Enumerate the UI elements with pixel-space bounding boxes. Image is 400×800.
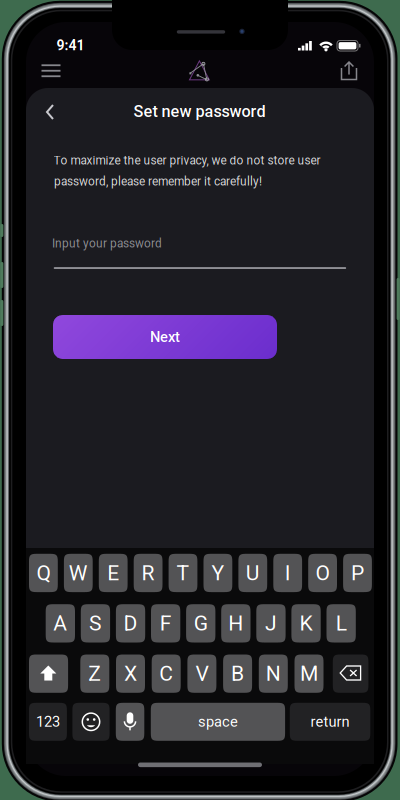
- staticText: Input your password: [52, 236, 162, 250]
- button[interactable]: S: [81, 604, 110, 642]
- button[interactable]: G: [186, 604, 215, 642]
- staticText: F: [160, 611, 172, 636]
- staticText: R: [142, 561, 155, 585]
- button[interactable]: C: [152, 654, 181, 693]
- button[interactable]: H: [221, 604, 250, 642]
- button[interactable]: [116, 703, 144, 741]
- staticText: Y: [211, 561, 224, 585]
- staticText: G: [194, 611, 208, 636]
- button[interactable]: D: [116, 604, 145, 642]
- staticText: M: [300, 661, 318, 686]
- button[interactable]: I: [273, 554, 302, 592]
- button[interactable]: R: [134, 554, 162, 592]
- button[interactable]: space: [151, 703, 285, 741]
- button[interactable]: W: [64, 554, 93, 592]
- button[interactable]: O: [308, 554, 337, 592]
- staticText: E: [107, 561, 119, 585]
- button[interactable]: F: [151, 604, 180, 642]
- button[interactable]: Share: [327, 51, 371, 91]
- staticText: P: [351, 561, 364, 585]
- button[interactable]: return: [290, 703, 370, 741]
- button[interactable]: L: [326, 604, 356, 642]
- staticText: D: [124, 611, 138, 636]
- button[interactable]: T: [169, 554, 197, 592]
- staticText: L: [336, 611, 347, 636]
- button[interactable]: Z: [80, 654, 109, 693]
- staticText: return: [311, 713, 350, 730]
- staticText: Set new password: [133, 102, 265, 121]
- staticText: A: [53, 611, 67, 636]
- staticText: V: [195, 661, 208, 686]
- button[interactable]: B: [223, 654, 252, 693]
- button[interactable]: E: [99, 554, 128, 592]
- staticText: S: [89, 611, 102, 636]
- button[interactable]: [29, 654, 68, 693]
- button[interactable]: Q: [29, 554, 58, 592]
- staticText: B: [231, 661, 244, 686]
- button[interactable]: U: [238, 554, 267, 592]
- button[interactable]: Back: [30, 92, 70, 132]
- button[interactable]: J: [256, 604, 286, 642]
- staticText: O: [316, 561, 330, 585]
- button[interactable]: [333, 654, 368, 693]
- staticText: X: [124, 661, 137, 686]
- staticText: Q: [36, 561, 50, 585]
- staticText: J: [265, 611, 277, 636]
- staticText: Next: [150, 328, 180, 346]
- staticText: U: [246, 561, 260, 585]
- staticText: space: [198, 713, 238, 730]
- button[interactable]: K: [291, 604, 321, 642]
- staticText: Z: [88, 661, 101, 686]
- staticText: I: [285, 561, 291, 585]
- button[interactable]: Next: [53, 315, 277, 359]
- button[interactable]: [72, 703, 110, 741]
- button[interactable]: Y: [203, 554, 232, 592]
- button[interactable]: V: [187, 654, 216, 693]
- staticText: H: [228, 611, 243, 636]
- button[interactable]: M: [294, 654, 323, 693]
- staticText: K: [300, 611, 313, 636]
- button[interactable]: A: [46, 604, 75, 642]
- staticText: C: [159, 661, 173, 686]
- staticText: 9:41: [56, 37, 84, 54]
- button[interactable]: N: [259, 654, 288, 693]
- button[interactable]: X: [116, 654, 145, 693]
- staticText: T: [176, 561, 189, 585]
- button[interactable]: 123: [29, 703, 67, 741]
- staticText: N: [266, 661, 281, 686]
- staticText: password, please remember it carefully!: [54, 174, 262, 188]
- staticText: To maximize the user privacy, we do not …: [53, 153, 320, 167]
- button[interactable]: Menu: [29, 51, 73, 91]
- staticText: W: [69, 561, 88, 585]
- staticText: 123: [36, 713, 60, 730]
- button[interactable]: P: [343, 554, 372, 592]
